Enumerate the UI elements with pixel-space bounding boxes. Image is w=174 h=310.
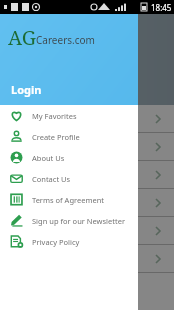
staticText: Privacy Policy xyxy=(32,237,80,247)
button[interactable]: Open item xyxy=(0,189,174,217)
staticText: Terms of Agreement xyxy=(32,195,104,205)
other: Open item xyxy=(154,171,162,179)
other: Open item xyxy=(154,115,162,123)
button[interactable]: Contact Us xyxy=(0,168,138,189)
button[interactable]: Open item xyxy=(0,105,174,133)
staticText: 18:45 xyxy=(151,2,172,13)
button[interactable]: Sign up for our Newsletter xyxy=(0,210,138,231)
button[interactable]: Privacy Policy xyxy=(0,231,138,252)
button[interactable]: Open item xyxy=(0,161,174,189)
staticText: Contact Us xyxy=(32,174,71,184)
staticText: Careers.com xyxy=(36,33,95,47)
button[interactable]: Login xyxy=(9,80,44,99)
button[interactable]: Terms of Agreement xyxy=(0,189,138,210)
staticText: About Us xyxy=(32,153,65,163)
button[interactable]: Create Profile xyxy=(0,126,138,147)
staticText: Login xyxy=(11,82,42,97)
staticText: AG xyxy=(8,24,36,51)
button[interactable]: About Us xyxy=(0,147,138,168)
button[interactable]: Open item xyxy=(0,217,174,245)
staticText: Create Profile xyxy=(32,132,80,142)
button[interactable]: Open item xyxy=(0,245,174,273)
other: Open item xyxy=(154,199,162,207)
button[interactable]: Open item xyxy=(0,133,174,161)
other: Open item xyxy=(154,255,162,263)
staticText: Sign up for our Newsletter xyxy=(32,216,126,226)
other: Open item xyxy=(154,143,162,151)
staticText: My Favorites xyxy=(32,111,77,121)
other: Open item xyxy=(154,227,162,235)
button[interactable]: My Favorites xyxy=(0,105,138,126)
